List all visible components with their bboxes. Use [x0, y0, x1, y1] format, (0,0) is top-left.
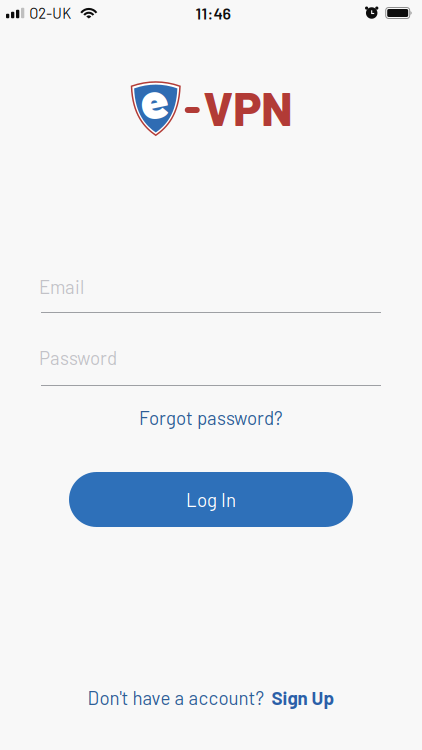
staticText: Log In	[186, 489, 236, 510]
staticText: 11:46	[195, 4, 230, 22]
button[interactable]: Forgot password?	[139, 405, 283, 430]
button[interactable]: Password	[0, 345, 422, 386]
staticText: O2-UK	[29, 4, 71, 22]
staticText: VPN	[203, 79, 292, 135]
button[interactable]: Sign Up	[271, 687, 334, 708]
button[interactable]: Email	[0, 274, 422, 313]
staticText: Sign Up	[271, 687, 334, 708]
staticText: Don't have a account?	[87, 687, 264, 708]
staticText: e	[139, 69, 167, 129]
button[interactable]: Log In	[69, 472, 353, 527]
staticText: Email	[39, 276, 84, 297]
staticText: Password	[39, 347, 117, 368]
staticText: Forgot password?	[139, 407, 283, 428]
